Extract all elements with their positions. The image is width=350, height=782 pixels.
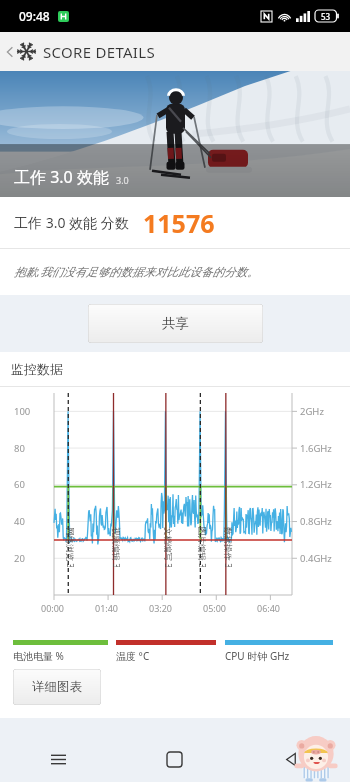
staticText: 工作 3.0 效能 分数 [14, 213, 129, 232]
staticText: 视频编辑 3.0 [110, 527, 122, 567]
staticText: 05:00 [203, 602, 227, 614]
button[interactable]: Home [116, 736, 233, 782]
staticText: 抱歉,我们没有足够的数据来对比此设备的分数。 [14, 264, 259, 280]
staticText: 1.2GHz [300, 478, 332, 491]
staticText: 图片编辑 3.0 [196, 527, 208, 567]
staticText: 20 [14, 552, 25, 565]
staticText: 1.6GHz [300, 442, 332, 455]
staticText: 01:40 [95, 602, 119, 614]
staticText: 共享 [162, 315, 189, 332]
staticText: 100 [14, 405, 31, 418]
staticText: SCORE DETAILS [43, 42, 155, 62]
staticText: 温度 °C [116, 649, 150, 663]
staticText: 数据操作 3.0 [222, 527, 234, 567]
staticText: 电池电量 % [13, 649, 64, 663]
staticText: 监控数据 [11, 361, 63, 377]
button[interactable]: Back [233, 736, 350, 782]
staticText: 详细图表 [32, 679, 82, 695]
staticText: 80 [14, 442, 25, 455]
button[interactable]: Back to score list [0, 32, 167, 71]
button[interactable]: 共享 [88, 304, 263, 343]
staticText: 09:48 [19, 8, 50, 24]
staticText: 60 [14, 478, 25, 491]
staticText: 工作 3.0 效能 [14, 166, 109, 188]
staticText: 11576 [143, 206, 215, 240]
staticText: 06:40 [257, 602, 281, 614]
staticText: 0.8GHz [300, 515, 332, 528]
staticText: 0.4GHz [300, 552, 332, 565]
staticText: CPU 时钟 GHz [225, 649, 290, 663]
staticText: 文档编写 3.0 [162, 527, 174, 567]
staticText: 53 [321, 11, 331, 22]
staticText: 3.0 [116, 174, 129, 186]
staticText: 40 [14, 515, 25, 528]
staticText: 00:00 [41, 602, 65, 614]
button[interactable]: 详细图表 [13, 669, 101, 705]
staticText: 2GHz [300, 405, 324, 418]
button[interactable]: Recent apps [0, 736, 116, 782]
staticText: 网络浏览 3.0 [64, 527, 76, 567]
staticText: 03:20 [149, 602, 173, 614]
